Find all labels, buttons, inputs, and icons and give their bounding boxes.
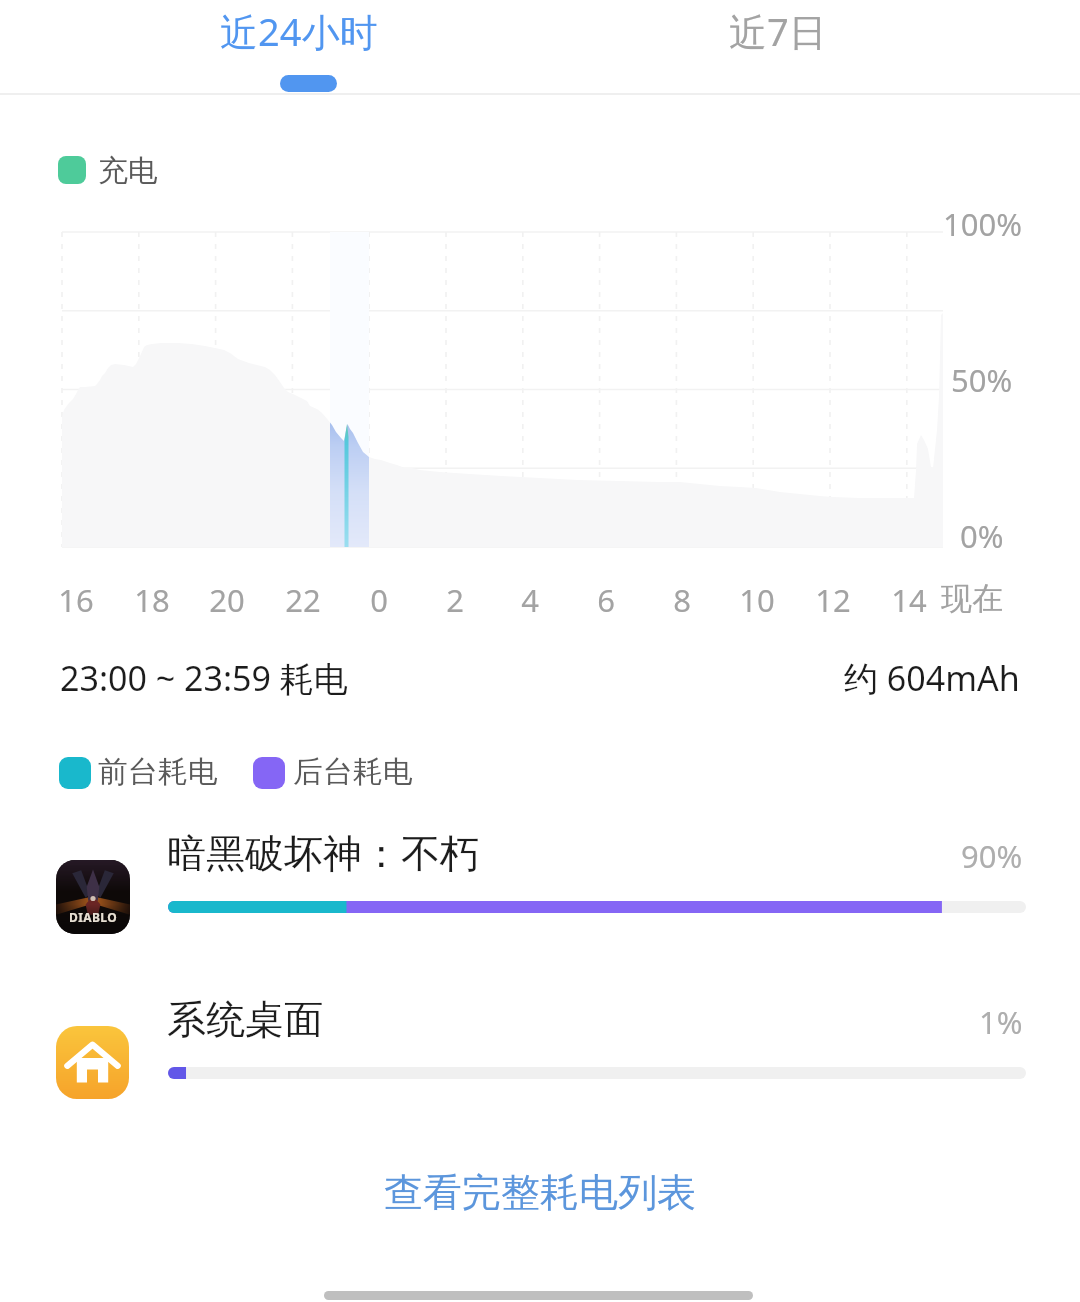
button[interactable]: 电量曲线图	[62, 232, 943, 547]
staticText: 8	[673, 579, 691, 621]
staticText: 10	[739, 579, 775, 621]
staticText: 近7日	[729, 5, 827, 57]
staticText: 前台耗电	[98, 753, 218, 791]
button[interactable]: 近7日	[578, 0, 978, 94]
staticText: 100%	[943, 203, 1022, 245]
staticText: 90%	[961, 835, 1023, 877]
staticText: 2	[446, 579, 464, 621]
staticText: 查看完整耗电列表	[384, 1168, 696, 1217]
staticText: 16	[58, 579, 94, 621]
staticText: 18	[134, 579, 170, 621]
staticText: DIABLO	[69, 909, 118, 925]
staticText: 充电	[98, 152, 158, 190]
staticText: 后台耗电	[293, 753, 413, 791]
button[interactable]: 近24小时	[24, 0, 574, 94]
staticText: 0	[370, 579, 388, 621]
button[interactable]: 系统桌面	[0, 995, 1080, 1125]
staticText: 22	[285, 579, 321, 621]
staticText: 23:00 ~ 23:59 耗电	[60, 655, 348, 701]
staticText: 6	[597, 579, 615, 621]
staticText: 约 604mAh	[844, 655, 1020, 701]
staticText: 50%	[951, 359, 1013, 401]
button[interactable]: 查看完整耗电列表	[340, 1152, 740, 1232]
staticText: 1%	[979, 1001, 1023, 1043]
staticText: 0%	[960, 515, 1004, 557]
staticText: 系统桌面	[167, 995, 323, 1044]
staticText: 20	[209, 579, 245, 621]
staticText: 12	[815, 579, 851, 621]
staticText: 近24小时	[220, 5, 378, 57]
staticText: 暗黑破坏神：不朽	[167, 829, 479, 878]
button[interactable]: DIABLO	[0, 829, 1080, 959]
staticText: 现在	[941, 579, 1003, 618]
staticText: 14	[891, 579, 927, 621]
staticText: 4	[521, 579, 539, 621]
